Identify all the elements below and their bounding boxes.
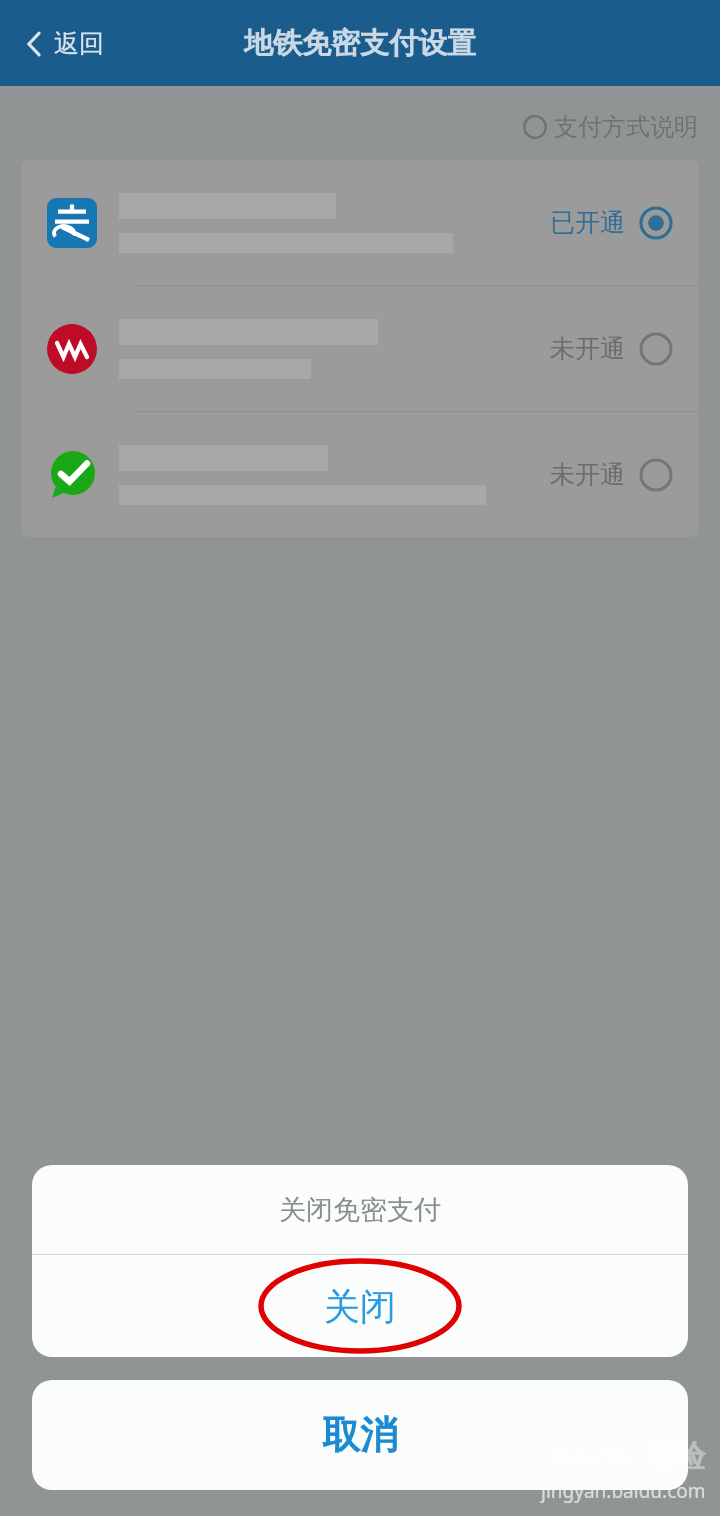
staticText: jingyan.baidu.com	[541, 1478, 706, 1504]
button[interactable]: 未开通	[22, 286, 698, 411]
staticText: 已开通	[550, 207, 625, 238]
button[interactable]: 取消	[32, 1380, 688, 1490]
staticText: 未开通	[550, 459, 625, 490]
staticText: 支付方式说明	[554, 112, 698, 142]
button[interactable]: 返回	[18, 20, 112, 67]
staticText: 取消	[322, 1411, 398, 1459]
staticText: Baidu 经验	[547, 1434, 706, 1476]
button[interactable]: 支付方式说明	[517, 106, 704, 148]
staticText: 地铁免密支付设置	[244, 25, 476, 62]
button[interactable]: 关闭	[32, 1255, 688, 1357]
staticText: 返回	[54, 28, 104, 59]
staticText: 未开通	[550, 333, 625, 364]
button[interactable]: 未开通	[22, 412, 698, 537]
staticText: 关闭	[324, 1284, 396, 1329]
button[interactable]: 已开通	[22, 160, 698, 285]
staticText: 关闭免密支付	[279, 1193, 441, 1227]
